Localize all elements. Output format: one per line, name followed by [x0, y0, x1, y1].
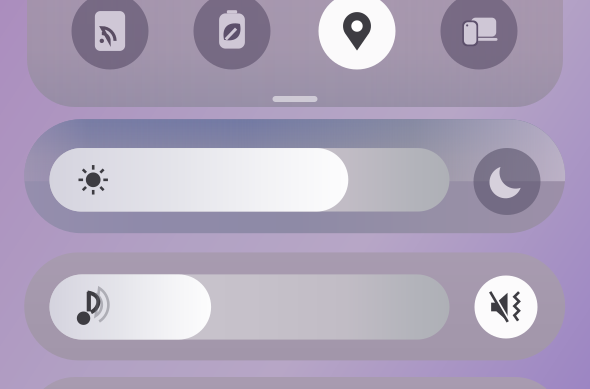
- button[interactable]: Silent Mode: [474, 275, 537, 338]
- button[interactable]: Brightness: [49, 148, 449, 212]
- button[interactable]: Location Services: [318, 0, 395, 69]
- button[interactable]: Low Power Mode: [193, 0, 270, 69]
- button[interactable]: Volume: [49, 274, 449, 340]
- button[interactable]: Theater Mode: [473, 148, 540, 215]
- button[interactable]: Screen Mirroring: [440, 0, 517, 69]
- button[interactable]: Ping iPhone: [71, 0, 148, 69]
